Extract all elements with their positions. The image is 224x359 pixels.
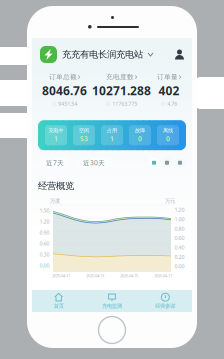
staticText: 近30天 [83, 158, 105, 167]
button[interactable]: 充电中 [45, 125, 67, 145]
staticText: 1.50 [39, 207, 49, 214]
staticText: 2025-04-13 [86, 273, 104, 278]
staticText: 53 [80, 134, 88, 143]
staticText: 万元 [165, 198, 175, 204]
staticText: 充电中 [48, 127, 63, 134]
staticText: 0.90 [39, 229, 49, 236]
button[interactable]: 故障 [129, 125, 151, 145]
staticText: 2025-04-15 [120, 273, 138, 278]
staticText: 万度 [50, 198, 60, 204]
staticText: 1 [110, 134, 114, 143]
staticText: 0.60 [174, 234, 184, 242]
staticText: 0 [138, 134, 142, 143]
staticText: 2025-04-11 [52, 273, 70, 278]
staticText: 0.30 [39, 251, 49, 258]
staticText: 1 [54, 134, 58, 143]
staticText: 1.00 [174, 216, 184, 223]
staticText: 首页 [54, 303, 64, 309]
button[interactable]: 近7天 [39, 157, 71, 168]
staticText: 离线 [163, 127, 173, 134]
staticText: 0 [166, 134, 170, 143]
button[interactable]: 占用 [101, 125, 123, 145]
button[interactable]: Account [175, 49, 184, 59]
staticText: 占用 [107, 127, 117, 134]
staticText: 9451.54 [58, 100, 77, 107]
button[interactable]: Sort [162, 158, 172, 168]
staticText: 4.76 [167, 100, 177, 107]
button[interactable]: 充电度数 [90, 73, 152, 107]
staticText: 充电度数 [106, 73, 134, 81]
staticText: 1.20 [39, 218, 49, 225]
button[interactable]: 离线 [157, 125, 179, 145]
staticText: 11763.775 [112, 100, 137, 107]
button[interactable]: 订单量 [152, 73, 185, 107]
button[interactable]: 充充有电长润充电站 [40, 46, 153, 63]
staticText: 0.80 [174, 225, 184, 232]
staticText: 订单总额 [49, 73, 77, 81]
staticText: 402 [158, 83, 179, 99]
button[interactable]: 空闲 [73, 125, 95, 145]
button[interactable]: 近30天 [76, 157, 112, 168]
button[interactable]: 经营参谋 [139, 290, 192, 312]
staticText: 1.20 [174, 206, 184, 213]
staticText: 经营参谋 [155, 303, 175, 309]
staticText: 0.40 [174, 244, 184, 251]
staticText: 0.60 [39, 240, 49, 247]
button[interactable]: More [175, 158, 185, 168]
staticText: 0.20 [174, 253, 184, 260]
staticText: 0.00 [39, 262, 49, 269]
staticText: 订单量 [157, 73, 178, 81]
staticText: 故障 [135, 127, 145, 134]
button[interactable]: 充电监测 [85, 290, 139, 312]
staticText: 经营概览 [38, 180, 74, 192]
staticText: 10271.288 [92, 83, 151, 99]
staticText: 近7天 [46, 158, 64, 167]
button[interactable]: 订单总额 [38, 73, 90, 107]
staticText: 0.00 [174, 263, 184, 270]
button[interactable]: 首页 [32, 290, 85, 312]
staticText: 8046.76 [42, 83, 87, 99]
staticText: 空闲 [79, 127, 89, 134]
button[interactable]: Filter [149, 158, 159, 168]
staticText: 充电监测 [102, 303, 122, 309]
staticText: 充充有电长润充电站 [62, 49, 143, 60]
staticText: 2025-04-17 [154, 273, 172, 278]
